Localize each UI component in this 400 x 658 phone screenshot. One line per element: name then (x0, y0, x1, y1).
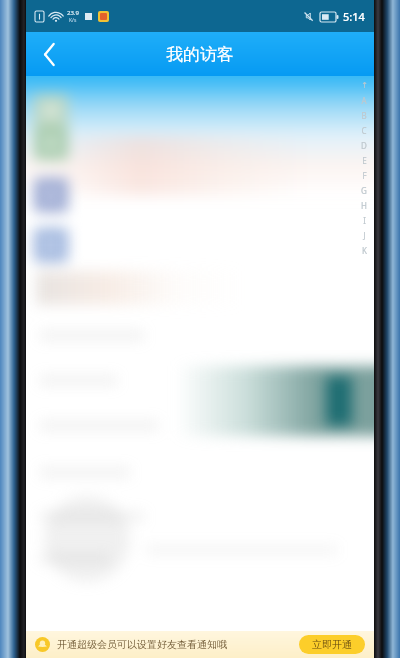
staticText: 开通超级会员可以设置好友查看通知哦 (57, 638, 227, 651)
button[interactable]: H (358, 198, 370, 213)
button[interactable]: B (358, 108, 370, 123)
staticText: B (361, 110, 367, 121)
staticText: K (362, 245, 367, 256)
button[interactable]: F (358, 168, 370, 183)
button[interactable]: D (358, 138, 370, 153)
button[interactable]: A (358, 93, 370, 108)
staticText: I (363, 215, 366, 226)
button[interactable]: C (358, 123, 370, 138)
staticText: ↑ (361, 81, 368, 90)
button[interactable]: Back (26, 32, 72, 76)
staticText: J (363, 230, 366, 241)
staticText: 我的访客 (166, 44, 234, 65)
button[interactable]: 开通超级会员可以设置好友查看通知哦 (26, 631, 374, 658)
staticText: D (361, 140, 367, 151)
staticText: 立即开通 (312, 638, 352, 651)
staticText: 23.9 (67, 9, 79, 17)
staticText: K/s (69, 17, 77, 24)
button[interactable]: E (358, 153, 370, 168)
button[interactable]: G (358, 183, 370, 198)
button[interactable]: J (358, 228, 370, 243)
button[interactable]: K (358, 243, 370, 258)
staticText: E (362, 155, 367, 166)
staticText: H (361, 200, 367, 211)
staticText: A (361, 95, 367, 106)
button[interactable]: I (358, 213, 370, 228)
staticText: 5:14 (343, 9, 365, 24)
staticText: C (361, 125, 367, 136)
staticText: F (362, 170, 367, 181)
button[interactable]: 立即开通 (299, 635, 365, 654)
staticText: G (361, 185, 367, 196)
button[interactable]: ↑ (358, 78, 370, 93)
